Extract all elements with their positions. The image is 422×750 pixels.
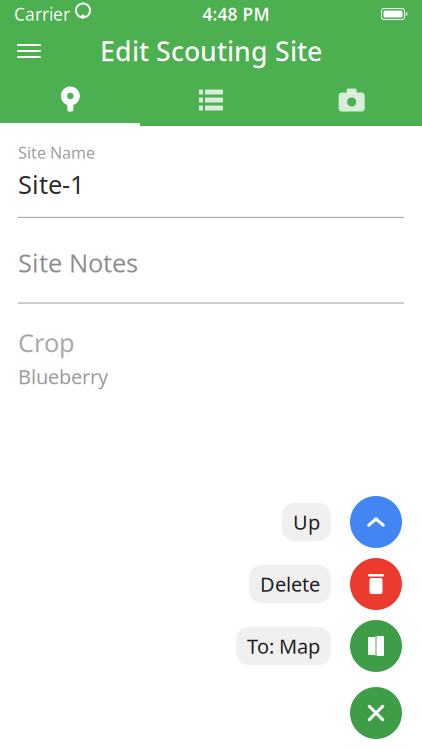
staticText: Blueberry: [18, 363, 108, 390]
button[interactable]: Close menu: [350, 687, 402, 739]
button[interactable]: Delete: [350, 558, 402, 610]
button[interactable]: Location: [0, 78, 141, 122]
staticText: Delete: [260, 571, 320, 597]
button[interactable]: To: Map: [236, 627, 331, 665]
staticText: Carrier: [14, 2, 70, 25]
button[interactable]: Delete: [249, 565, 331, 603]
staticText: Crop: [18, 325, 75, 359]
staticText: Site-1: [18, 167, 84, 201]
staticText: Site Name: [18, 142, 95, 163]
staticText: Site Notes: [18, 246, 138, 279]
staticText: Edit Scouting Site: [100, 33, 322, 69]
staticText: 4:48 PM: [202, 2, 269, 25]
button[interactable]: Details: [141, 78, 281, 122]
staticText: To: Map: [247, 633, 320, 659]
button[interactable]: Menu: [6, 29, 52, 73]
button[interactable]: To Map: [350, 620, 402, 672]
button[interactable]: Up: [350, 496, 402, 548]
button[interactable]: Up: [282, 503, 331, 541]
staticText: Up: [293, 509, 320, 535]
button[interactable]: Photos: [281, 78, 422, 122]
